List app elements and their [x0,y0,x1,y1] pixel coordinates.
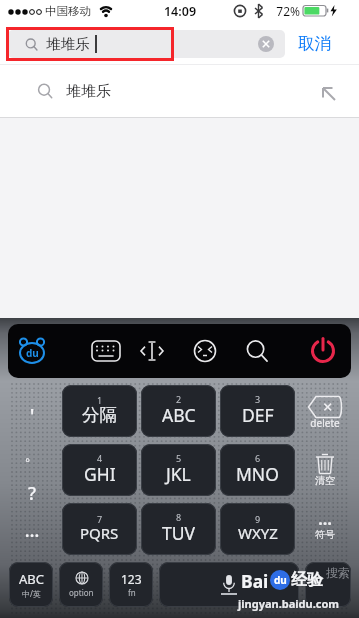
button[interactable] [245,339,269,363]
staticText: 5 [176,452,182,464]
staticText: 符号 [305,528,345,541]
button[interactable]: ' [14,402,50,429]
staticText: 堆堆乐 [66,82,111,101]
button[interactable]: ABC [9,562,53,607]
button[interactable]: ? [14,481,50,506]
button[interactable]: 7 [62,503,137,555]
button[interactable] [258,36,274,52]
staticText: Bai [241,569,269,591]
staticText: 8 [176,511,182,523]
staticText: du [26,346,39,360]
staticText: … [305,508,345,530]
staticText: 4 [97,452,103,464]
staticText: DEF [242,403,274,427]
button[interactable]: … [14,518,50,543]
staticText: 7 [97,513,103,525]
staticText: jingyan.baidu.com [238,596,340,611]
button[interactable]: 。 [14,446,50,465]
button[interactable]: 堆堆乐 [0,64,359,118]
staticText: 中/英 [22,588,41,599]
staticText: WXYZ [238,523,278,543]
staticText: 14:09 [159,3,201,20]
button[interactable]: 1 [62,385,137,437]
staticText: delete [305,416,345,430]
button[interactable] [92,341,120,361]
button[interactable]: 8 [141,503,216,555]
staticText: MNO [236,462,279,486]
button[interactable]: 9 [220,503,295,555]
staticText: 中国移动 [45,4,91,18]
staticText: 6 [255,452,261,464]
staticText: PQRS [80,523,119,543]
staticText: 清空 [305,474,345,487]
staticText: ABC [162,403,196,427]
button[interactable] [310,338,336,364]
staticText: 2 [176,393,182,405]
staticText: 堆堆乐 [46,35,90,53]
staticText: option [69,587,94,598]
staticText: JKL [166,462,191,486]
button[interactable]: 取消 [298,33,331,54]
button[interactable] [305,562,351,607]
button[interactable]: 123 [109,562,153,607]
button[interactable] [193,339,217,363]
staticText: fn [128,587,136,598]
button[interactable]: 3 [220,385,295,437]
staticText: 分隔 [82,404,117,426]
button[interactable]: 6 [220,444,295,496]
button[interactable]: 2 [141,385,216,437]
staticText: ABC [19,570,44,588]
staticText: du [274,573,287,587]
staticText: GHI [84,462,116,486]
button[interactable] [316,454,334,474]
staticText: 123 [121,571,142,587]
staticText: 1 [97,394,103,406]
button[interactable] [308,396,342,418]
button[interactable]: 堆堆乐 [8,30,285,58]
staticText: 72% [268,3,300,19]
staticText: 经验 [291,570,323,590]
button[interactable] [140,340,164,362]
staticText: 搜索 [326,565,350,580]
button[interactable]: du [17,337,47,365]
button[interactable]: option [59,562,103,607]
staticText: TUV [162,521,196,545]
button[interactable]: 5 [141,444,216,496]
button[interactable] [159,562,299,607]
staticText: 9 [255,513,261,525]
staticText: 3 [255,393,261,405]
button[interactable]: 4 [62,444,137,496]
